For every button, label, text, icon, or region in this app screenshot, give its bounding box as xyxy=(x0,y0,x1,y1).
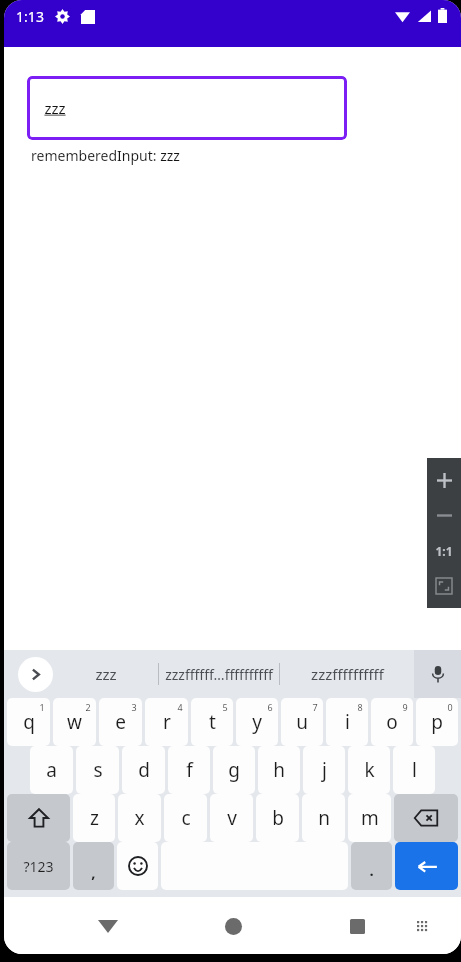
staticText: j xyxy=(322,757,327,783)
button[interactable]: 1:1 xyxy=(431,538,457,564)
button[interactable]: Enter xyxy=(395,842,458,890)
button[interactable]: i xyxy=(326,698,368,746)
button[interactable]: g xyxy=(213,746,255,794)
staticText: r xyxy=(163,709,171,735)
staticText: 1 xyxy=(39,701,45,713)
staticText: 0 xyxy=(447,701,453,713)
button[interactable]: , xyxy=(73,842,114,890)
staticText: zzz xyxy=(95,664,117,684)
button[interactable]: r xyxy=(145,698,188,746)
button[interactable]: Home xyxy=(213,906,253,946)
button[interactable]: p xyxy=(416,698,458,746)
staticText: ?123 xyxy=(23,857,54,876)
button[interactable]: Shift xyxy=(7,794,70,842)
button[interactable]: h xyxy=(258,746,300,794)
button[interactable]: m xyxy=(348,794,391,842)
button[interactable]: k xyxy=(348,746,390,794)
button[interactable]: o xyxy=(371,698,413,746)
button[interactable]: q xyxy=(7,698,50,746)
staticText: . xyxy=(369,860,374,880)
staticText: p xyxy=(431,709,443,735)
staticText: 2 xyxy=(85,701,91,713)
staticText: b xyxy=(272,805,284,831)
staticText: rememberedInput: zzz xyxy=(31,146,180,165)
staticText: i xyxy=(345,709,350,735)
staticText: t xyxy=(209,709,216,735)
button[interactable]: x xyxy=(118,794,161,842)
staticText: o xyxy=(386,709,398,735)
staticText: z xyxy=(90,805,99,831)
staticText: y xyxy=(252,709,262,735)
button[interactable]: t xyxy=(191,698,233,746)
button[interactable]: Voice input xyxy=(414,650,461,698)
staticText: e xyxy=(115,709,126,735)
button[interactable]: Hide keyboard xyxy=(88,906,128,946)
staticText: 8 xyxy=(357,701,363,713)
staticText: 7 xyxy=(312,701,318,713)
button[interactable]: l xyxy=(393,746,435,794)
button[interactable]: a xyxy=(30,746,73,794)
button[interactable]: n xyxy=(302,794,345,842)
button[interactable]: d xyxy=(122,746,165,794)
button[interactable]: s xyxy=(76,746,119,794)
button[interactable]: Backspace xyxy=(394,794,458,842)
staticText: m xyxy=(361,805,379,831)
staticText: 1:1 xyxy=(435,543,453,559)
staticText: 3 xyxy=(131,701,137,713)
button[interactable]: zzzffffff…ffffffffff xyxy=(159,650,279,698)
staticText: a xyxy=(46,757,57,783)
staticText: v xyxy=(227,805,237,831)
button[interactable]: zzzffffffffff xyxy=(280,650,414,698)
button[interactable]: z xyxy=(73,794,115,842)
staticText: zzz xyxy=(44,98,66,118)
button[interactable]: e xyxy=(99,698,142,746)
staticText: 5 xyxy=(222,701,228,713)
button[interactable]: w xyxy=(53,698,96,746)
button[interactable]: y xyxy=(236,698,278,746)
button[interactable]: . xyxy=(351,842,392,890)
staticText: zzzffffff…ffffffffff xyxy=(165,665,273,684)
staticText: d xyxy=(138,757,150,783)
staticText: u xyxy=(296,709,308,735)
button[interactable]: Expand toolbar xyxy=(18,657,53,692)
button[interactable]: f xyxy=(168,746,210,794)
button[interactable]: b xyxy=(256,794,299,842)
button[interactable]: zzz xyxy=(27,76,347,140)
staticText: w xyxy=(67,709,82,735)
button[interactable]: Fit to window xyxy=(431,573,457,599)
button[interactable]: Emoji xyxy=(117,842,158,890)
button[interactable]: v xyxy=(210,794,253,842)
staticText: g xyxy=(228,757,240,783)
staticText: k xyxy=(364,757,375,783)
staticText: s xyxy=(93,757,103,783)
button[interactable]: c xyxy=(164,794,207,842)
button[interactable]: zzz xyxy=(53,650,158,698)
staticText: 4 xyxy=(177,701,183,713)
button[interactable]: Recent apps xyxy=(337,906,377,946)
staticText: , xyxy=(91,862,96,882)
staticText: zzzffffffffff xyxy=(311,664,384,684)
staticText: 9 xyxy=(402,701,408,713)
button[interactable]: Switch keyboard xyxy=(407,911,437,941)
button[interactable]: Zoom out xyxy=(431,502,457,528)
button[interactable]: u xyxy=(281,698,323,746)
staticText: q xyxy=(23,709,35,735)
button[interactable]: ?123 xyxy=(7,842,70,890)
staticText: x xyxy=(134,805,145,831)
staticText: f xyxy=(186,757,193,783)
staticText: c xyxy=(181,805,191,831)
staticText: l xyxy=(412,757,417,783)
button[interactable]: Zoom in xyxy=(431,467,457,493)
staticText: 1:13 xyxy=(16,7,44,26)
staticText: h xyxy=(273,757,285,783)
button[interactable]: j xyxy=(303,746,345,794)
staticText: n xyxy=(318,805,330,831)
staticText: 6 xyxy=(267,701,273,713)
